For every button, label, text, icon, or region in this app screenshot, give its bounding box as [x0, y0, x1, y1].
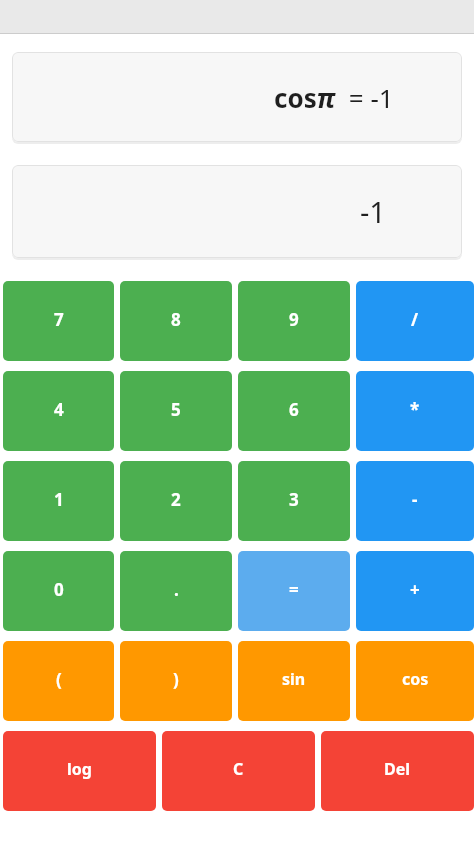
- button[interactable]: sin: [238, 641, 350, 721]
- staticText: *: [410, 398, 420, 421]
- staticText: cos: [402, 668, 429, 690]
- staticText: .: [174, 578, 179, 601]
- staticText: 4: [54, 398, 64, 421]
- staticText: log: [67, 758, 92, 780]
- staticText: 3: [289, 488, 299, 511]
- button[interactable]: 9: [238, 281, 350, 361]
- button[interactable]: Del: [321, 731, 474, 811]
- button[interactable]: +: [356, 551, 474, 631]
- button[interactable]: 7: [3, 281, 114, 361]
- button[interactable]: 8: [120, 281, 232, 361]
- staticText: Del: [384, 758, 411, 780]
- button[interactable]: 2: [120, 461, 232, 541]
- staticText: ): [173, 668, 179, 691]
- button[interactable]: =: [238, 551, 350, 631]
- staticText: C: [233, 758, 244, 780]
- button[interactable]: 4: [3, 371, 114, 451]
- staticText: 2: [171, 488, 181, 511]
- staticText: -1: [360, 192, 386, 231]
- staticText: 0: [54, 578, 64, 601]
- staticText: =: [289, 578, 299, 601]
- button[interactable]: cos: [356, 641, 474, 721]
- button[interactable]: 6: [238, 371, 350, 451]
- staticText: (: [56, 668, 62, 691]
- staticText: /: [411, 308, 419, 331]
- button[interactable]: 1: [3, 461, 114, 541]
- staticText: cosπ = -1: [274, 80, 394, 115]
- button[interactable]: .: [120, 551, 232, 631]
- staticText: 1: [54, 488, 64, 511]
- staticText: 5: [171, 398, 181, 421]
- staticText: 7: [54, 308, 64, 331]
- button[interactable]: (: [3, 641, 114, 721]
- staticText: sin: [282, 668, 306, 690]
- staticText: 9: [289, 308, 299, 331]
- staticText: 6: [289, 398, 299, 421]
- staticText: -: [412, 488, 418, 511]
- button[interactable]: log: [3, 731, 156, 811]
- button[interactable]: 0: [3, 551, 114, 631]
- button[interactable]: 3: [238, 461, 350, 541]
- button[interactable]: 5: [120, 371, 232, 451]
- staticText: +: [410, 578, 420, 601]
- button[interactable]: /: [356, 281, 474, 361]
- button[interactable]: *: [356, 371, 474, 451]
- button[interactable]: -: [356, 461, 474, 541]
- button[interactable]: ): [120, 641, 232, 721]
- button[interactable]: C: [162, 731, 315, 811]
- staticText: 8: [171, 308, 181, 331]
